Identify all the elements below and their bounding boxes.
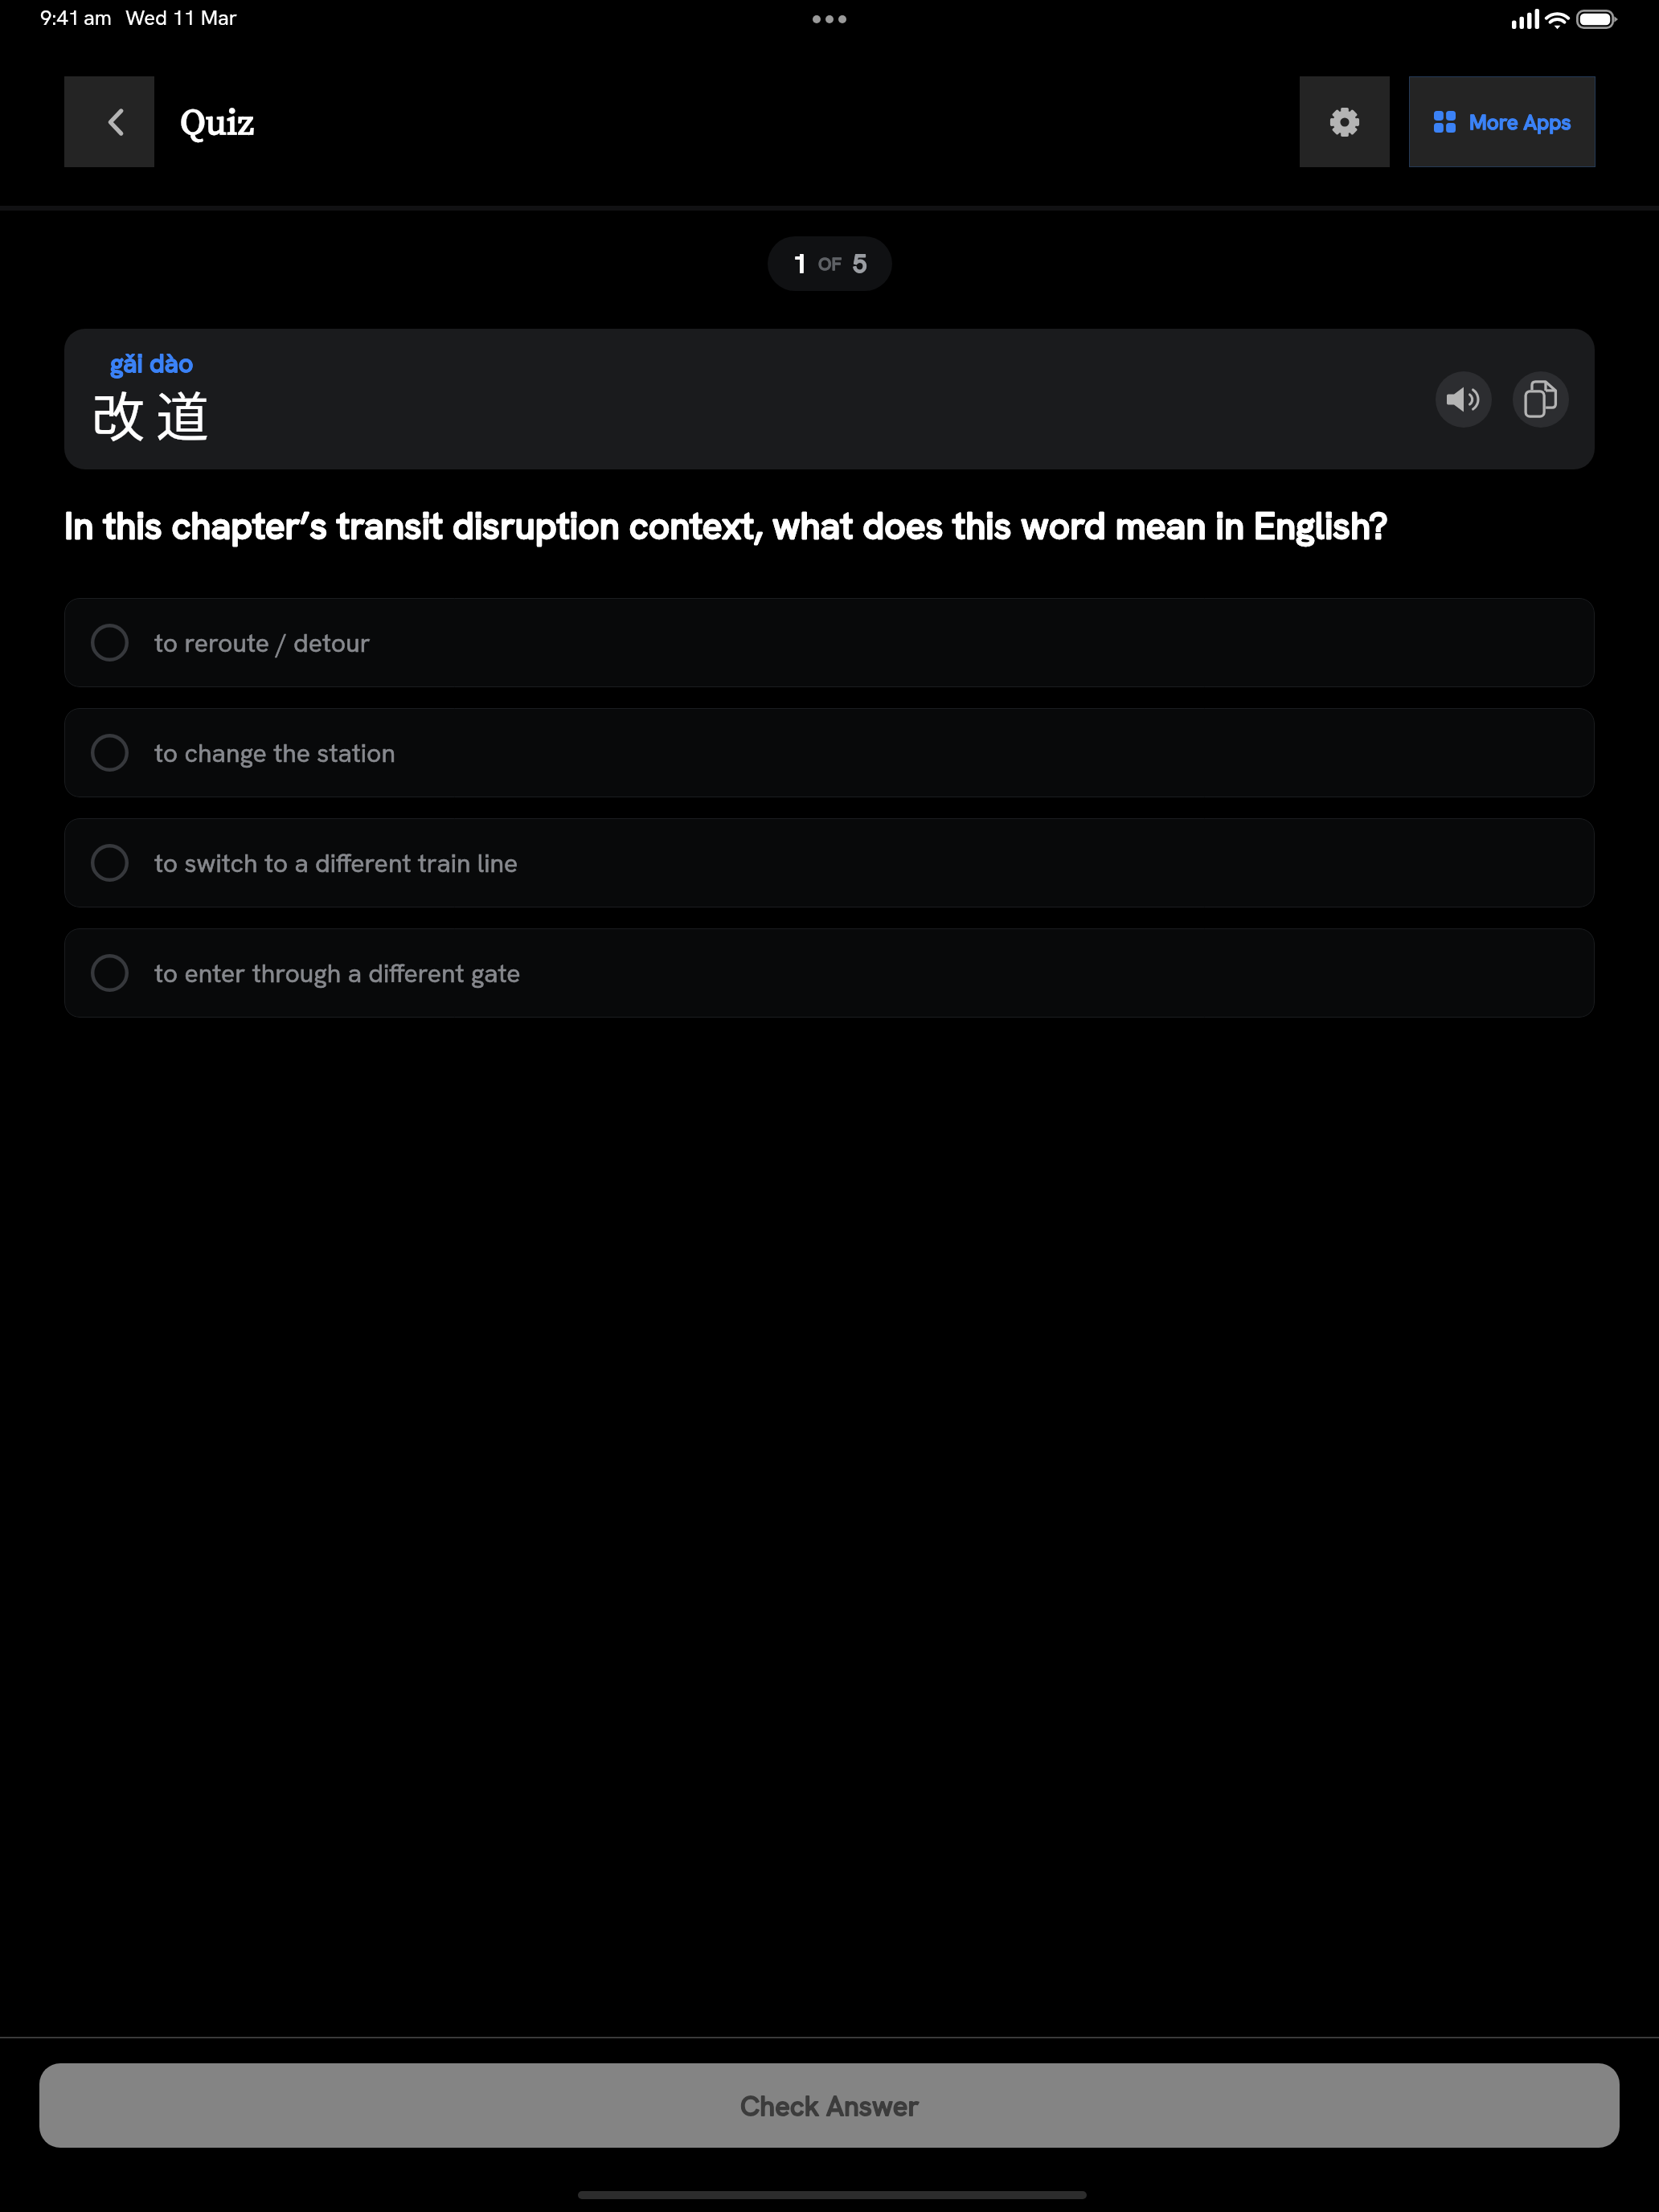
staticText: to enter through a different gate (154, 956, 521, 990)
staticText: In this chapter’s transit disruption con… (64, 502, 1388, 550)
staticText: to change the station (154, 736, 396, 770)
staticText: More Apps (1469, 109, 1571, 136)
staticText: to change the station (154, 736, 396, 770)
button[interactable]: Settings (1300, 76, 1390, 167)
staticText: to switch to a different train line (154, 846, 518, 880)
staticText: to reroute / detour (154, 626, 371, 660)
staticText: 1 (793, 248, 808, 280)
staticText: to enter through a different gate (154, 956, 521, 990)
button[interactable]: to switch to a different train line (64, 818, 1595, 907)
staticText: OF (818, 252, 842, 276)
staticText: In this chapter’s transit disruption con… (64, 502, 1388, 550)
button[interactable]: Play pronunciation (1436, 371, 1492, 428)
staticText: Wed 11 Mar (125, 4, 238, 31)
staticText: Check Answer (740, 2087, 920, 2124)
button[interactable]: More Apps (1409, 76, 1596, 167)
staticText: 改道 (92, 375, 220, 452)
button[interactable]: Copy word (1513, 371, 1569, 428)
staticText: OF (818, 252, 842, 276)
staticText: Quiz (180, 96, 254, 146)
button[interactable]: Back (64, 76, 154, 167)
staticText: 5 (853, 248, 867, 280)
staticText: More Apps (1469, 109, 1571, 136)
button[interactable]: to reroute / detour (64, 598, 1595, 687)
button[interactable]: to change the station (64, 708, 1595, 797)
staticText: 9:41 am (40, 4, 112, 31)
staticText: Check Answer (740, 2087, 920, 2124)
button[interactable]: Check Answer (39, 2063, 1620, 2148)
staticText: gǎi dào (110, 346, 194, 380)
staticText: to reroute / detour (154, 626, 371, 660)
staticText: gǎi dào (110, 346, 194, 380)
staticText: 1 (793, 248, 808, 280)
button[interactable]: to enter through a different gate (64, 928, 1595, 1018)
staticText: 5 (853, 248, 867, 280)
staticText: to switch to a different train line (154, 846, 518, 880)
